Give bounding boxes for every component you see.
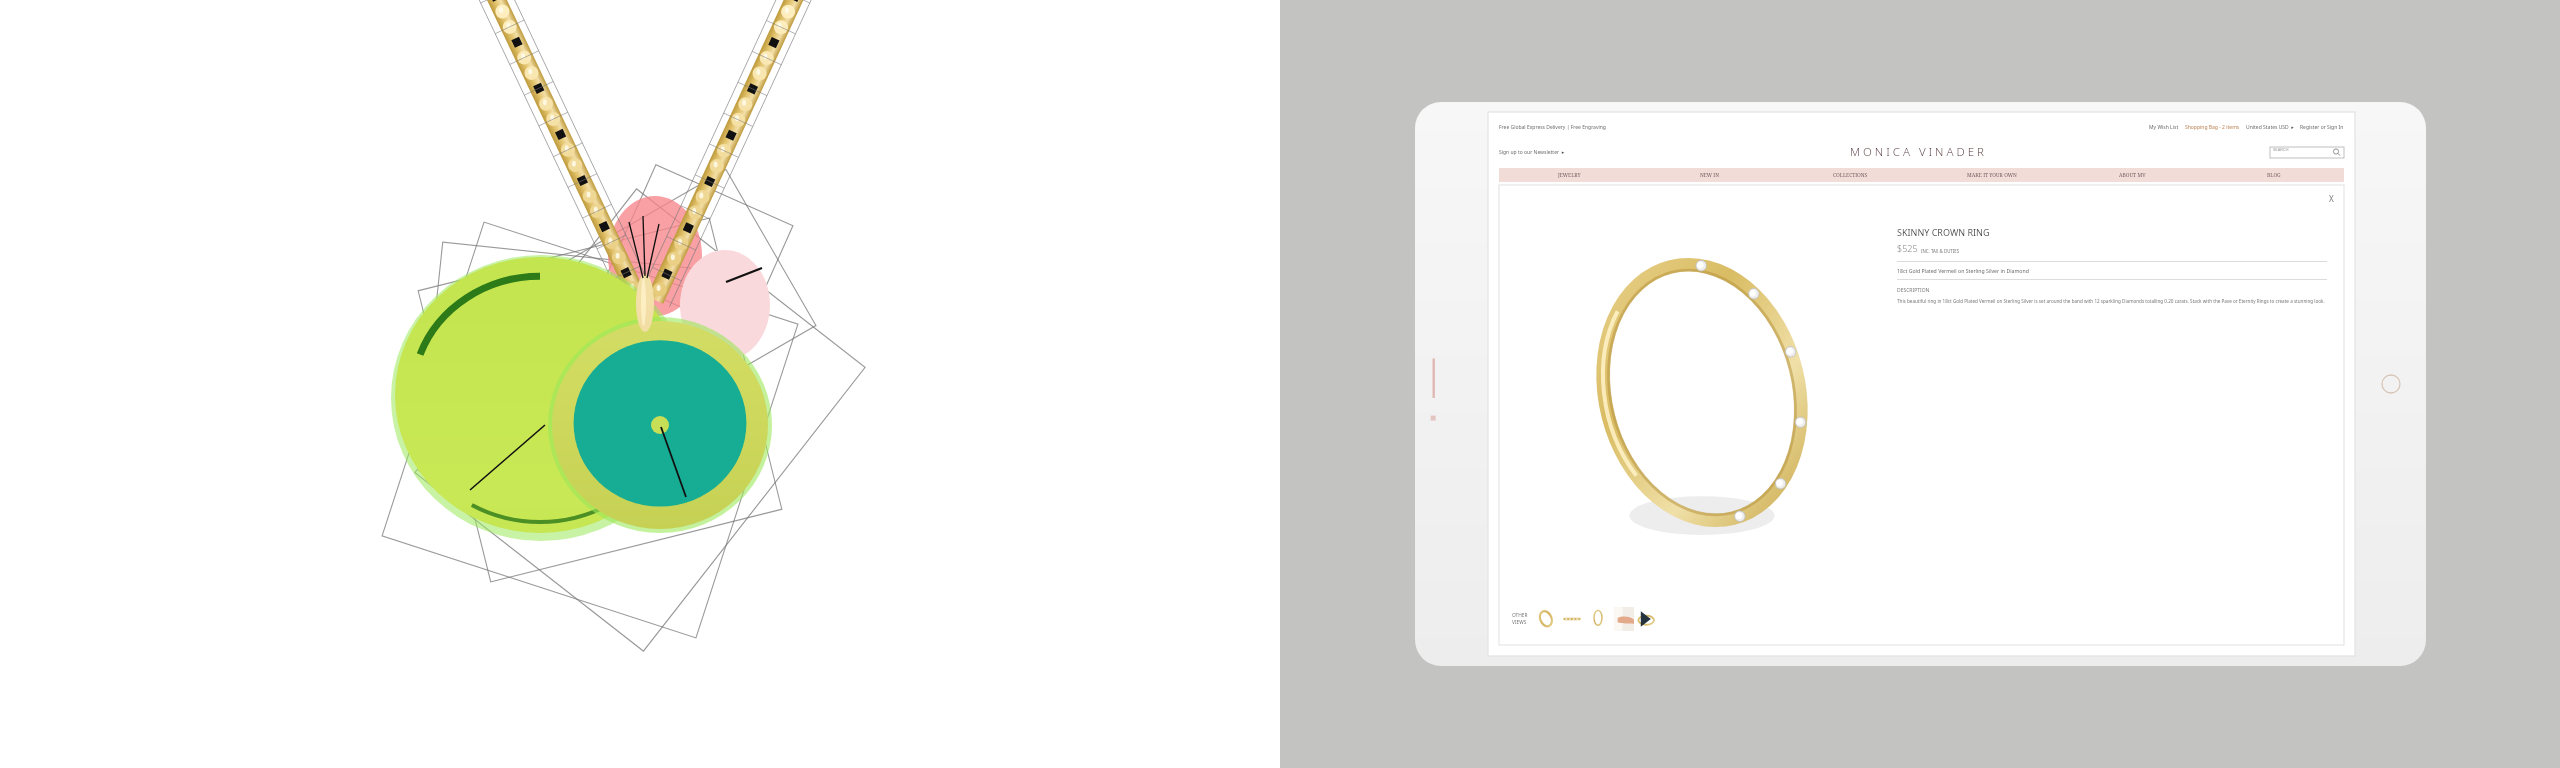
button[interactable]: JEWELRY — [1499, 168, 1639, 182]
button[interactable]: Home — [2381, 374, 2401, 394]
staticText: This beautiful ring in 18ct Gold Plated … — [1897, 298, 2325, 304]
button[interactable]: Register or Sign In — [2300, 124, 2344, 131]
staticText: My Wish List — [2149, 124, 2179, 131]
staticText: United States USD ▸ — [2246, 124, 2294, 131]
staticText: DESCRIPTION — [1897, 287, 1930, 294]
button[interactable]: ABOUT MV — [2062, 168, 2203, 182]
button[interactable]: Close — [2325, 192, 2337, 204]
button[interactable]: Skinny Crown Ring photo — [1581, 260, 1823, 548]
button[interactable]: Sign up to our Newsletter ▸ — [1499, 149, 1565, 156]
staticText: SKINNY CROWN RING — [1897, 226, 1990, 238]
button[interactable]: Alternate view 5 — [1636, 607, 1656, 631]
staticText: X — [2329, 193, 2334, 204]
staticText: SEARCH — [2273, 147, 2289, 153]
button[interactable]: Alternate view 2 — [1562, 607, 1582, 631]
staticText: COLLECTIONS — [1833, 172, 1868, 179]
button[interactable]: Tablet device — [1415, 102, 2426, 666]
staticText: Shopping Bag - 2 items — [2185, 124, 2240, 131]
button[interactable]: BLOG — [2203, 168, 2344, 182]
staticText: Sign up to our Newsletter ▸ — [1499, 149, 1565, 156]
button[interactable]: Alternate view 4 — [1614, 607, 1634, 631]
staticText: M O N I C A V I N A D E R — [1850, 144, 1984, 160]
staticText: BLOG — [2267, 172, 2281, 179]
button[interactable]: My Wish List — [2149, 124, 2179, 131]
staticText: JEWELRY — [1558, 172, 1581, 179]
staticText: ABOUT MV — [2119, 172, 2146, 179]
staticText: Register or Sign In — [2300, 124, 2344, 131]
button[interactable]: United States USD ▸ — [2246, 124, 2294, 131]
staticText: VIEWS — [1512, 619, 1527, 626]
staticText: Free Global Express Delivery | Free Engr… — [1499, 124, 1606, 131]
button[interactable]: MAKE IT YOUR OWN — [1921, 168, 2062, 182]
staticText: MAKE IT YOUR OWN — [1967, 172, 2017, 179]
button[interactable]: Necklace artwork — [0, 0, 1280, 768]
button[interactable]: NEW IN — [1639, 168, 1780, 182]
staticText: INC. TAX & DUTIES — [1921, 248, 1960, 254]
button[interactable]: Alternate view 1 — [1536, 607, 1556, 631]
staticText: 18ct Gold Plated Vermeil on Sterling Sil… — [1897, 267, 2029, 274]
button[interactable]: Shopping Bag - 2 items — [2185, 124, 2240, 131]
staticText: NEW IN — [1700, 172, 1720, 179]
button[interactable]: Alternate view 3 — [1588, 607, 1608, 631]
staticText: $525 — [1897, 242, 1918, 254]
button[interactable]: COLLECTIONS — [1780, 168, 1921, 182]
button[interactable]: Search — [2270, 147, 2344, 158]
staticText: OTHER — [1512, 612, 1528, 619]
